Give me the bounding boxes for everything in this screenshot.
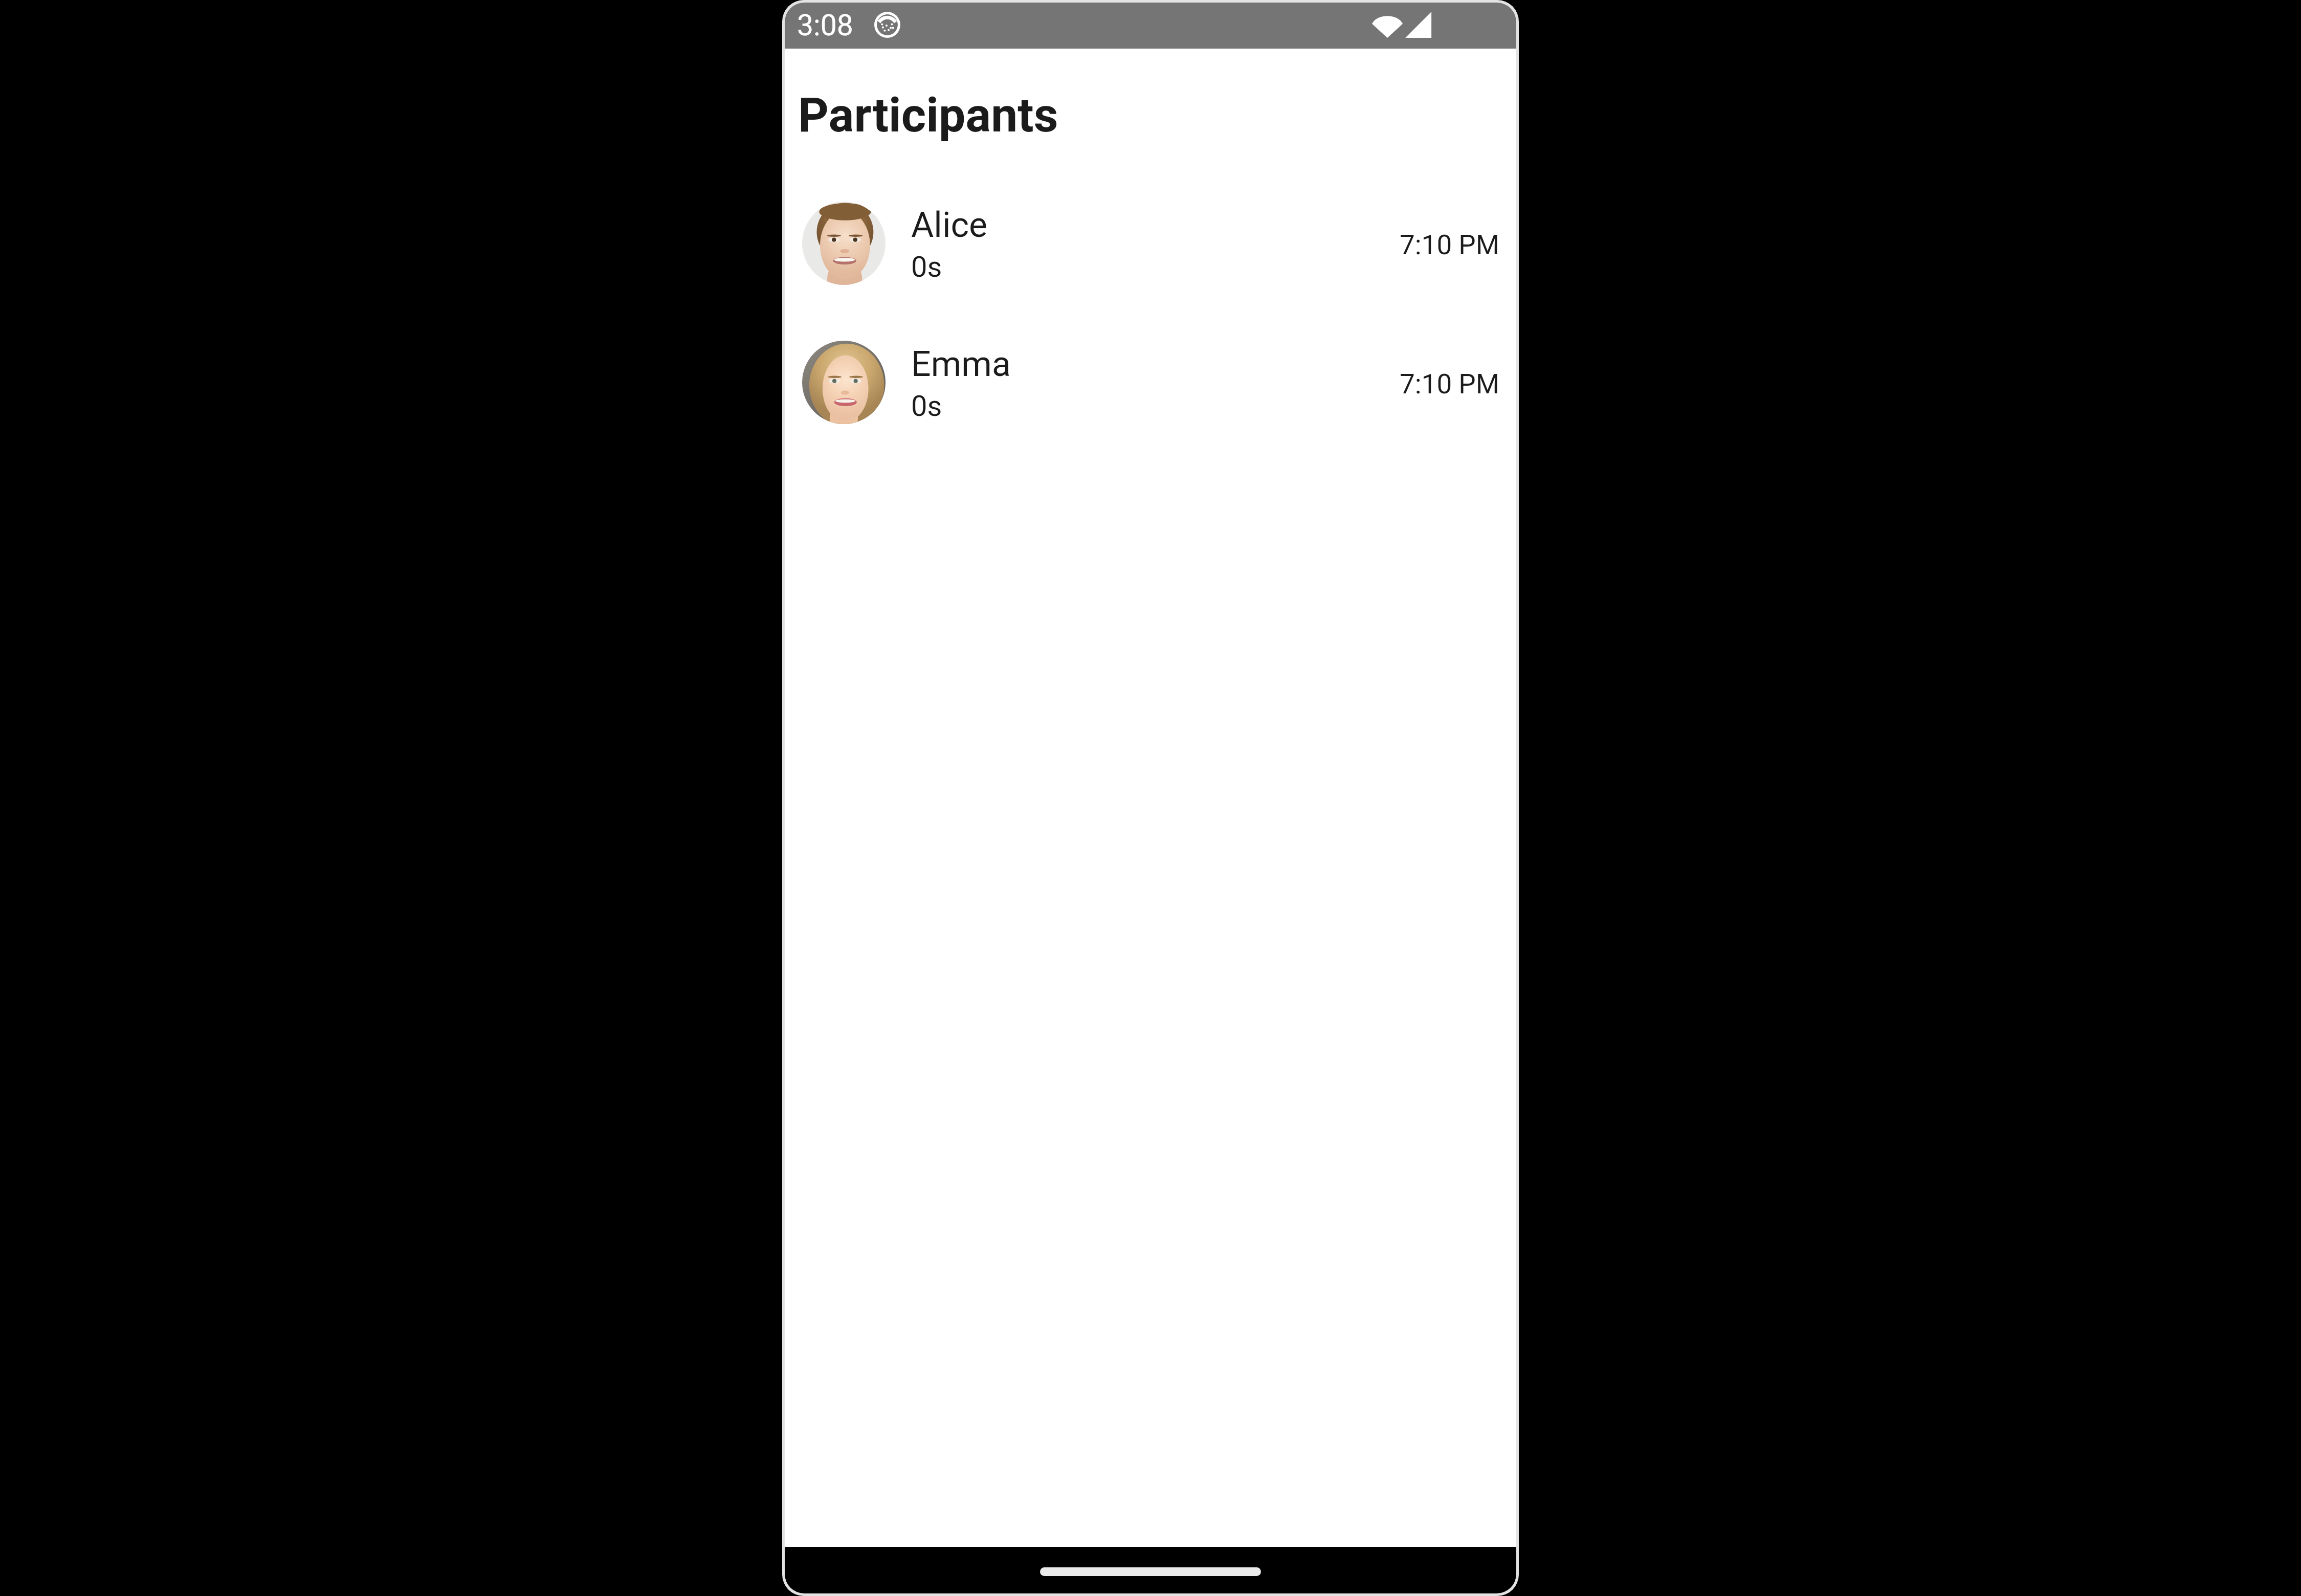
- staticText: 3:08: [797, 8, 853, 42]
- staticText: 7:10 PM: [1400, 229, 1500, 261]
- staticText: 0s: [911, 250, 942, 284]
- button[interactable]: Home: [1040, 1567, 1261, 1576]
- staticText: 0s: [911, 389, 942, 423]
- staticText: Participants: [798, 87, 1058, 143]
- button[interactable]: Emma: [785, 341, 1516, 424]
- button[interactable]: Alice: [785, 202, 1516, 285]
- staticText: Emma: [911, 344, 1011, 385]
- staticText: Alice: [911, 205, 988, 246]
- staticText: 7:10 PM: [1400, 368, 1500, 400]
